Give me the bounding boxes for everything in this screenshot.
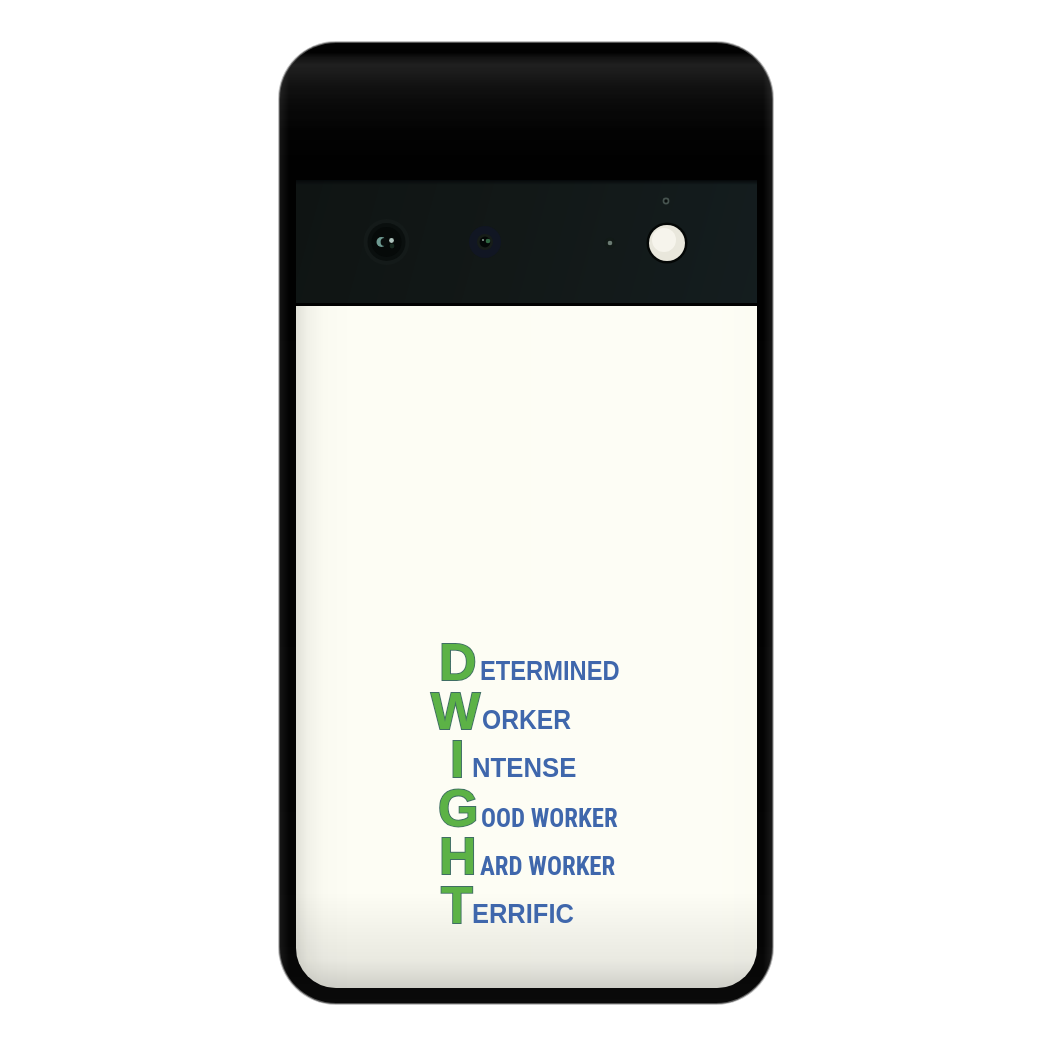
staticText: ORKER [482,705,571,735]
staticText: I [450,730,465,788]
staticText: T [441,876,473,934]
staticText: ARD WORKER [480,852,616,881]
staticText: D [439,633,477,691]
staticText: H [439,827,477,885]
staticText: OOD WORKER [481,804,618,833]
staticText: W [431,682,481,740]
staticText: D [439,633,477,691]
button[interactable]: D [0,0,1050,1050]
staticText: I [450,730,465,788]
staticText: H [439,827,477,885]
staticText: ETERMINED [480,656,620,686]
staticText: G [438,779,479,837]
other: Camera module [0,0,1050,1050]
staticText: G [438,779,479,837]
staticText: T [441,876,473,934]
staticText: W [431,682,481,740]
staticText: ERRIFIC [472,899,574,929]
staticText: NTENSE [472,753,577,783]
